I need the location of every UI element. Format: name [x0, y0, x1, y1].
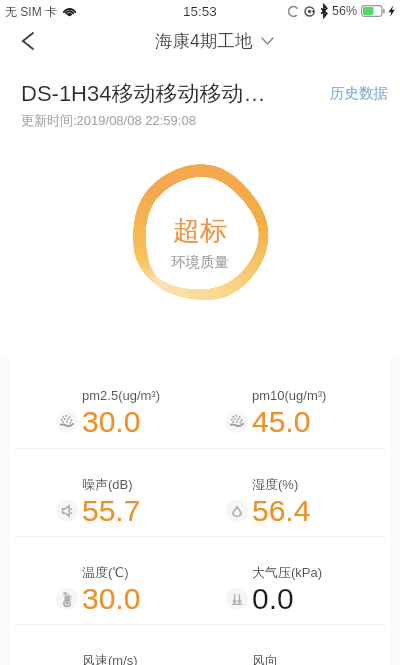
- staticText: 湿度(%): [252, 476, 299, 492]
- staticText: 0.0: [252, 582, 294, 616]
- button[interactable]: Back: [9, 23, 45, 59]
- button[interactable]: pm10(ug/m³): [180, 388, 350, 439]
- button[interactable]: 海康4期工地: [152, 27, 276, 55]
- staticText: 历史数据: [330, 84, 388, 102]
- staticText: 55.7: [82, 494, 141, 528]
- staticText: 更新时间:2019/08/08 22:59:08: [21, 112, 196, 128]
- staticText: 海康4期工地: [155, 30, 253, 52]
- staticText: 温度(℃): [82, 564, 129, 580]
- button[interactable]: 温度(℃): [10, 564, 180, 616]
- button[interactable]: 大气压(kPa): [180, 564, 350, 616]
- button[interactable]: 历史数据: [330, 84, 388, 102]
- staticText: pm2.5(ug/m³): [82, 388, 161, 403]
- staticText: DS-1H34移动移动移动…: [21, 80, 266, 108]
- staticText: 无 SIM 卡: [5, 4, 58, 19]
- staticText: 30.0: [82, 405, 141, 439]
- staticText: 56%: [332, 4, 358, 18]
- staticText: 56.4: [252, 494, 311, 528]
- button[interactable]: 风速(m/s): [10, 652, 180, 665]
- staticText: 45.0: [252, 405, 311, 439]
- staticText: 大气压(kPa): [252, 564, 323, 580]
- button[interactable]: 风向: [180, 652, 350, 665]
- staticText: 环境质量: [171, 253, 229, 271]
- button[interactable]: 湿度(%): [180, 476, 350, 528]
- staticText: 噪声(dB): [82, 476, 133, 492]
- staticText: 30.0: [82, 582, 141, 616]
- button[interactable]: pm2.5(ug/m³): [10, 388, 180, 439]
- staticText: 风速(m/s): [82, 652, 138, 665]
- staticText: 超标: [173, 214, 227, 248]
- button[interactable]: 噪声(dB): [10, 476, 180, 528]
- staticText: pm10(ug/m³): [252, 388, 327, 403]
- staticText: 15:53: [183, 4, 217, 19]
- staticText: 风向: [252, 652, 278, 665]
